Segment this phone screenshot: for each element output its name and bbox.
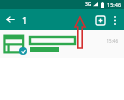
button[interactable]: 15:46 [0, 30, 124, 58]
staticText: 15:46 [107, 1, 122, 8]
button[interactable]: Back [3, 12, 18, 27]
staticText: 15:46 [106, 38, 118, 44]
button[interactable]: Archive [92, 12, 108, 28]
button[interactable]: More options [108, 13, 122, 27]
staticText: 3G [85, 1, 92, 8]
staticText: 1 [22, 14, 28, 26]
